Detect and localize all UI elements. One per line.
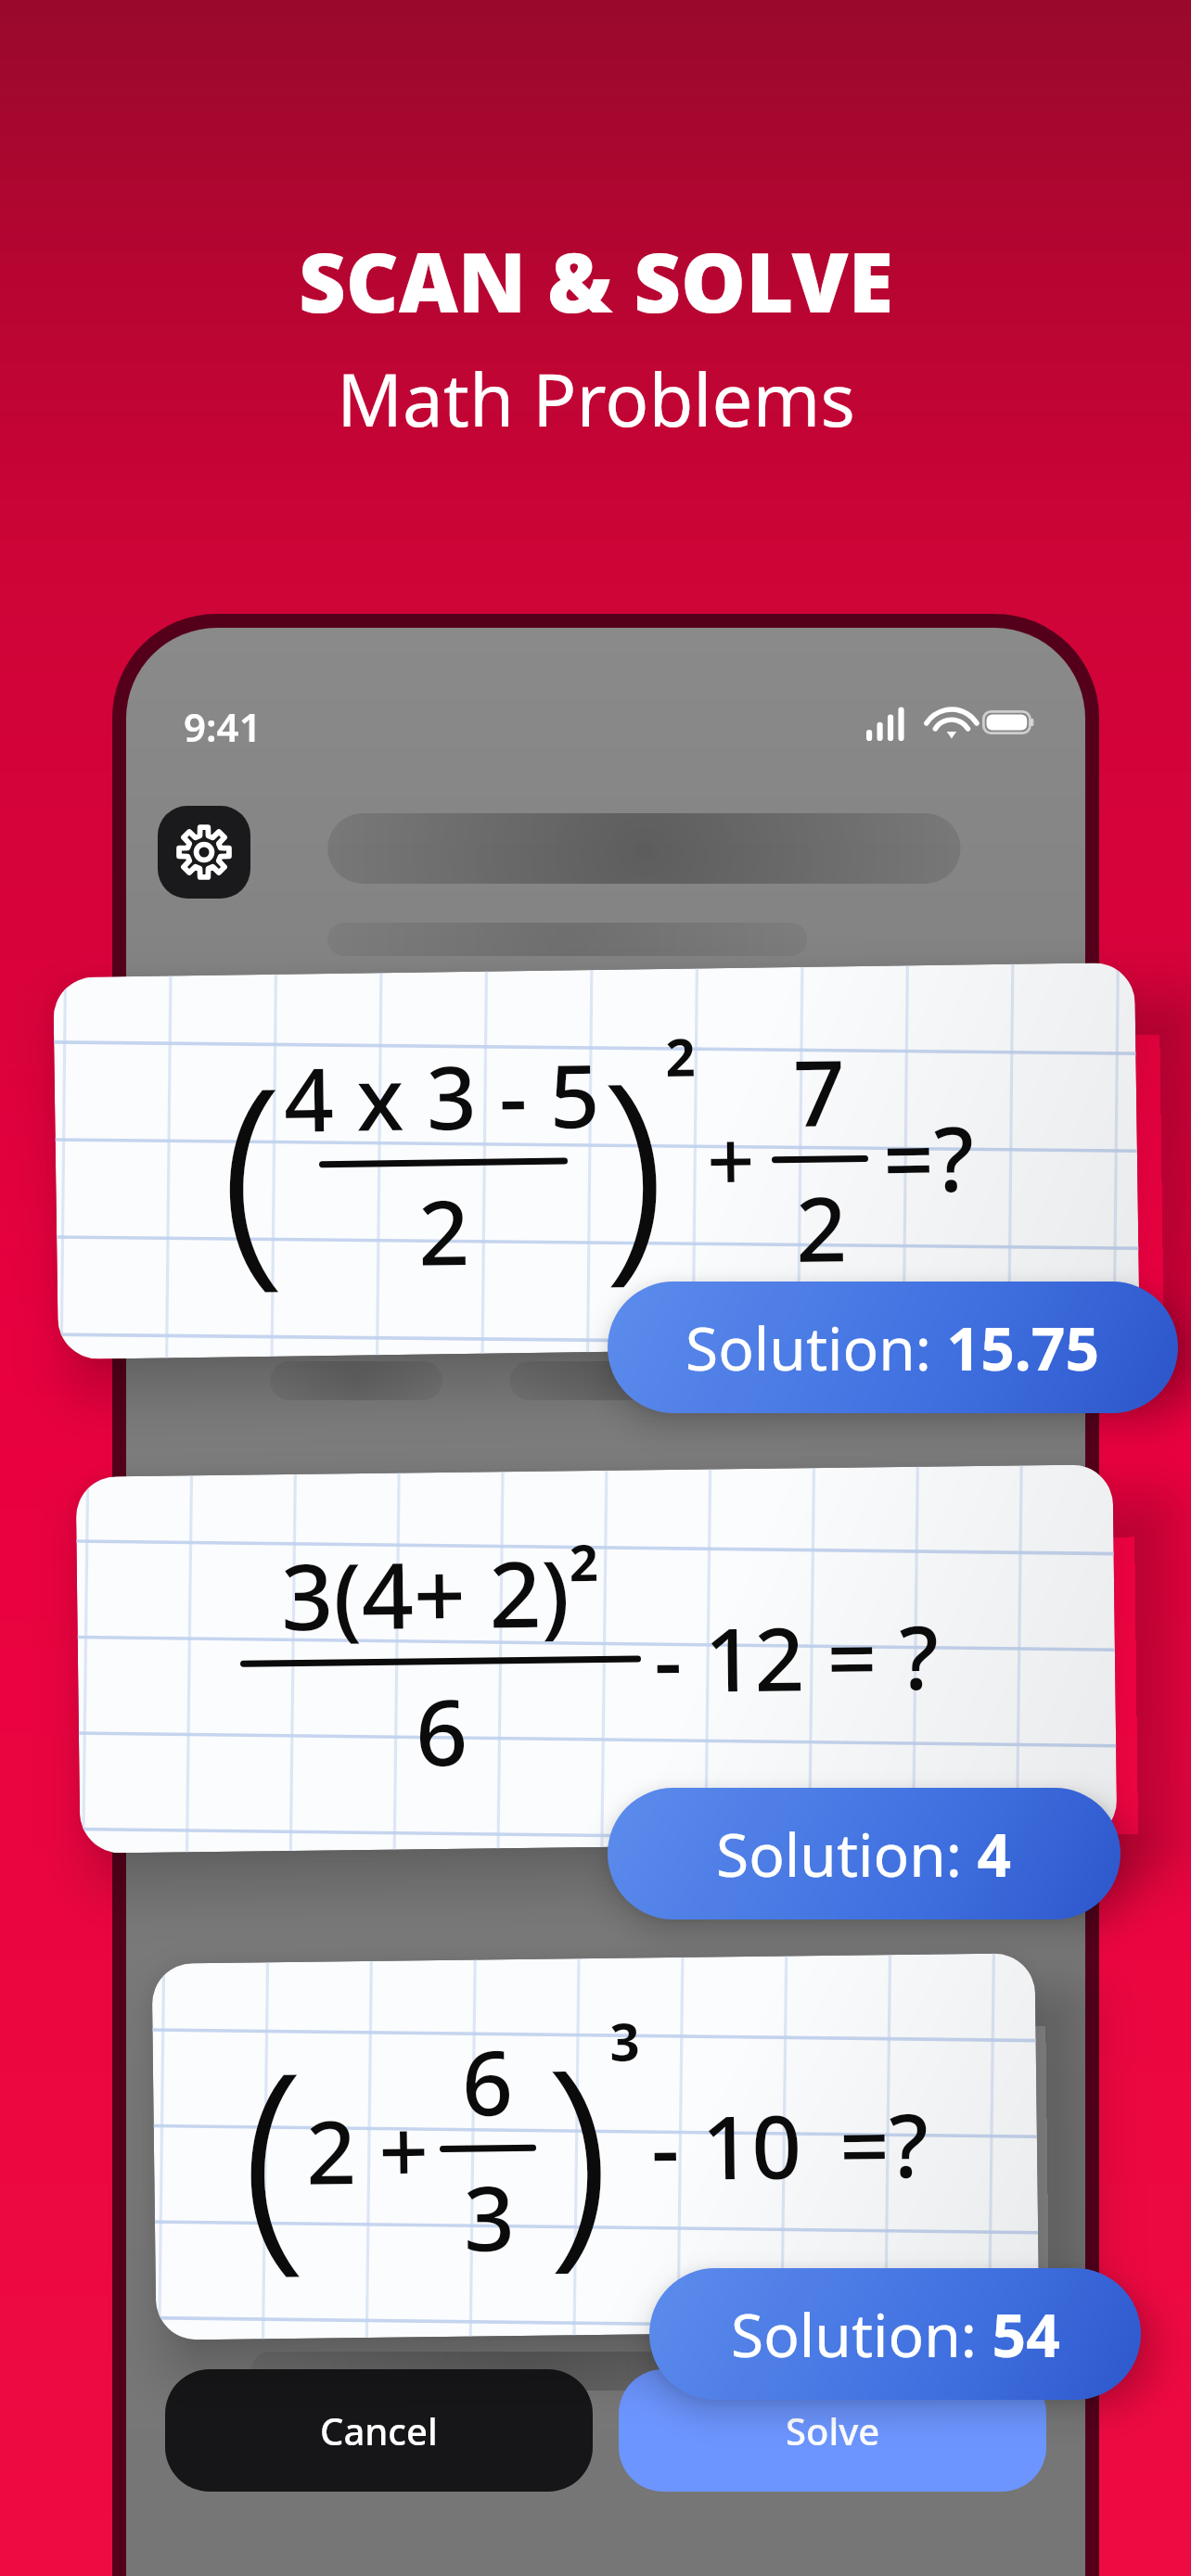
- button[interactable]: 3(4+ 2): [76, 1464, 1117, 1853]
- staticText: Solution: 15.75: [685, 1307, 1100, 1388]
- button[interactable]: Solve: [619, 2369, 1046, 2492]
- button[interactable]: Cancel: [165, 2369, 593, 2492]
- staticText: - 10: [650, 2086, 803, 2206]
- button[interactable]: Solution: 54: [649, 2268, 1141, 2400]
- staticText: ): [543, 1989, 612, 2306]
- staticText: 6: [461, 2020, 514, 2142]
- staticText: 2 +: [305, 2090, 429, 2210]
- staticText: 9:41: [184, 700, 262, 753]
- button[interactable]: Solution: 4: [608, 1788, 1121, 1919]
- staticText: 4 x 3 - 5: [283, 1035, 601, 1158]
- staticText: SCAN & SOLVE: [299, 225, 893, 337]
- staticText: - 12 = ?: [653, 1596, 939, 1718]
- staticText: =?: [839, 2084, 929, 2204]
- staticText: Solution: 4: [716, 1814, 1012, 1894]
- button[interactable]: Settings: [158, 806, 250, 899]
- staticText: 2: [795, 1166, 848, 1288]
- staticText: (: [239, 1993, 308, 2309]
- staticText: 7: [792, 1029, 847, 1153]
- staticText: 2: [665, 1020, 697, 1091]
- staticText: (: [218, 1008, 287, 1325]
- staticText: ): [599, 1002, 668, 1319]
- button[interactable]: Solution: 15.75: [608, 1282, 1178, 1413]
- staticText: 3: [463, 2155, 515, 2277]
- staticText: 2: [417, 1169, 470, 1291]
- staticText: 6: [415, 1668, 469, 1792]
- staticText: Cancel: [320, 2405, 438, 2455]
- staticText: Math Problems: [337, 350, 855, 448]
- staticText: =?: [882, 1095, 975, 1218]
- staticText: Solve: [786, 2405, 880, 2455]
- staticText: Solution: 54: [731, 2294, 1060, 2375]
- button[interactable]: (: [53, 962, 1140, 1359]
- button[interactable]: (: [152, 1953, 1039, 2340]
- staticText: 3(4+ 2): [280, 1529, 570, 1656]
- staticText: 2: [569, 1527, 598, 1596]
- staticText: +: [706, 1102, 756, 1217]
- staticText: 3: [610, 2005, 641, 2076]
